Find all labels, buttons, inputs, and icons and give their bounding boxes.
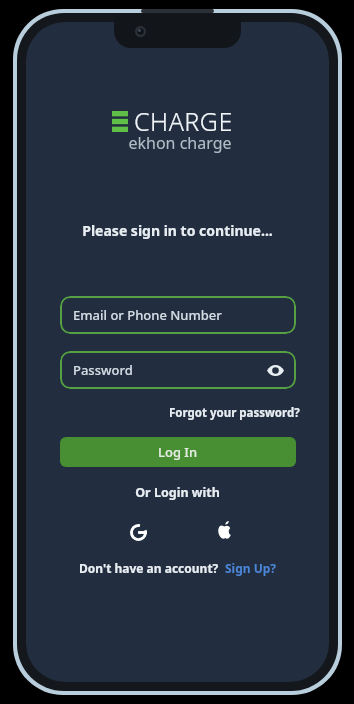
button[interactable]: Password (60, 351, 296, 389)
button[interactable]: Sign Up? (219, 560, 277, 576)
staticText: Please sign in to continue... (26, 221, 329, 240)
staticText: Log In (158, 443, 198, 461)
button[interactable]: Forgot your password? (166, 402, 303, 424)
button[interactable]: Log In (60, 437, 296, 467)
button[interactable]: Email or Phone Number (60, 296, 296, 334)
staticText: Sign Up? (225, 560, 277, 576)
staticText: Or Login with (26, 484, 329, 501)
staticText: ekhon charge (115, 132, 245, 154)
staticText: Password (73, 361, 133, 379)
staticText: CHARGE (134, 104, 233, 138)
button[interactable]: Show password (262, 357, 288, 383)
staticText: Don't have an account? (79, 560, 219, 576)
button[interactable]: Sign in with Apple (208, 514, 240, 546)
staticText: Email or Phone Number (73, 306, 222, 324)
staticText: Forgot your password? (169, 405, 300, 421)
button[interactable]: Sign in with Google (122, 516, 154, 548)
